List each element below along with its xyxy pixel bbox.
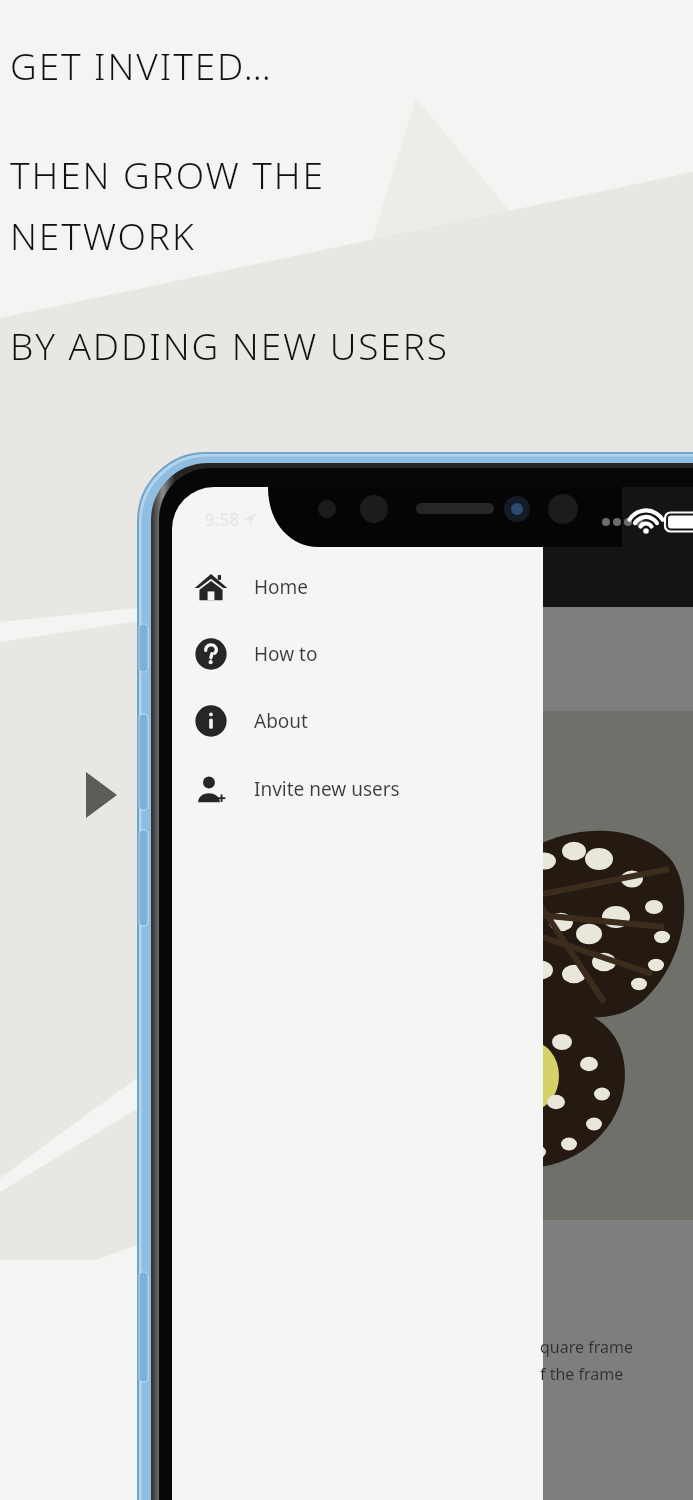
button[interactable]: Home <box>172 562 543 612</box>
staticText: 9:58 <box>205 508 239 531</box>
staticText: Invite new users <box>254 776 400 802</box>
staticText: How to <box>254 641 318 667</box>
button[interactable]: Invite new users <box>172 764 543 814</box>
staticText: quare frame <box>540 1336 633 1358</box>
staticText: f the frame <box>540 1363 624 1385</box>
staticText: THEN GROW THE NETWORK <box>10 149 325 261</box>
button[interactable]: About <box>172 696 543 746</box>
staticText: About <box>254 708 308 734</box>
staticText: GET INVITED… <box>10 40 273 90</box>
staticText: BY ADDING NEW USERS <box>10 320 449 370</box>
button[interactable]: How to <box>172 629 543 679</box>
staticText: Home <box>254 574 309 600</box>
